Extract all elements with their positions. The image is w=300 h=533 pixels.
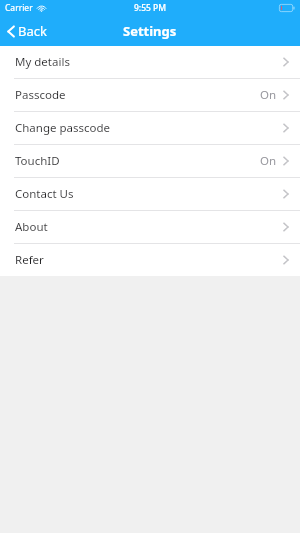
staticText: Refer [15, 252, 44, 268]
button[interactable]: Contact Us [0, 178, 300, 210]
staticText: On [260, 87, 277, 103]
staticText: About [15, 219, 48, 235]
button[interactable]: My details [0, 46, 300, 78]
staticText: On [260, 153, 277, 169]
button[interactable]: Change passcode [0, 112, 300, 144]
button[interactable]: Refer [0, 244, 300, 276]
button[interactable]: TouchID [0, 145, 300, 177]
staticText: Change passcode [15, 120, 111, 136]
staticText: Passcode [15, 87, 66, 103]
button[interactable]: Back [0, 16, 55, 46]
staticText: 9:55 PM [134, 2, 167, 14]
button[interactable]: Passcode [0, 79, 300, 111]
staticText: Carrier [5, 2, 33, 14]
staticText: Settings [123, 22, 177, 40]
button[interactable]: About [0, 211, 300, 243]
staticText: Contact Us [15, 186, 74, 202]
staticText: TouchID [15, 153, 60, 169]
staticText: My details [15, 54, 70, 70]
staticText: Back [18, 22, 47, 40]
